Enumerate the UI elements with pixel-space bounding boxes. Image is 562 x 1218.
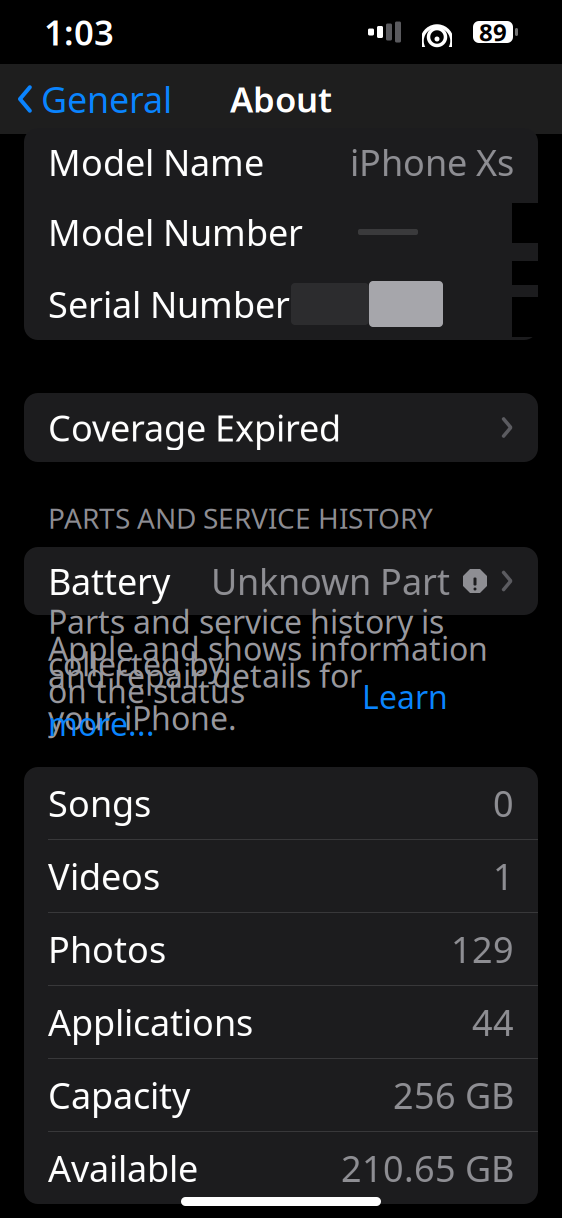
- staticText: Coverage Expired: [48, 404, 341, 451]
- button[interactable]: Photos: [24, 913, 538, 985]
- staticText: Serial Number: [48, 280, 290, 328]
- staticText: more...: [48, 702, 155, 745]
- button[interactable]: Coverage Expired: [24, 393, 538, 462]
- staticText: Model Number: [48, 208, 303, 256]
- staticText: 210.65 GB: [341, 1144, 514, 1192]
- button[interactable]: Learn: [362, 675, 448, 718]
- button[interactable]: Available: [24, 1132, 538, 1204]
- staticText: Battery: [48, 557, 170, 605]
- staticText: Available: [48, 1144, 198, 1192]
- staticText: Learn: [362, 675, 448, 718]
- button[interactable]: Applications: [24, 986, 538, 1058]
- staticText: Model Name: [48, 138, 264, 186]
- button[interactable]: Songs: [24, 767, 538, 839]
- staticText: 1:03: [44, 9, 114, 55]
- staticText: About: [230, 76, 332, 122]
- staticText: Apple and shows information on the statu…: [48, 627, 488, 712]
- staticText: 44: [472, 998, 514, 1046]
- button[interactable]: Battery: [24, 547, 538, 615]
- button[interactable]: Model Number: [24, 196, 538, 268]
- staticText: Photos: [48, 925, 166, 973]
- button[interactable]: Videos: [24, 840, 538, 912]
- staticText: 0: [493, 779, 514, 827]
- button[interactable]: General: [2, 71, 186, 127]
- staticText: Parts and service history is collected b…: [48, 600, 444, 685]
- staticText: Videos: [48, 852, 160, 900]
- staticText: Songs: [48, 779, 151, 827]
- staticText: iPhone Xs: [350, 138, 514, 186]
- staticText: Applications: [48, 998, 253, 1046]
- button[interactable]: more...: [48, 702, 155, 745]
- staticText: PARTS AND SERVICE HISTORY: [48, 499, 433, 537]
- button[interactable]: Capacity: [24, 1059, 538, 1131]
- staticText: 89: [479, 16, 507, 48]
- button[interactable]: Serial Number: [24, 268, 538, 340]
- staticText: 129: [451, 925, 514, 973]
- button[interactable]: Model Name: [24, 128, 538, 196]
- staticText: Capacity: [48, 1071, 190, 1119]
- staticText: 1: [493, 852, 514, 900]
- staticText: General: [41, 75, 172, 123]
- staticText: 256 GB: [393, 1071, 514, 1119]
- staticText: Unknown Part: [211, 557, 450, 605]
- staticText: and repair details for your iPhone.: [48, 654, 362, 739]
